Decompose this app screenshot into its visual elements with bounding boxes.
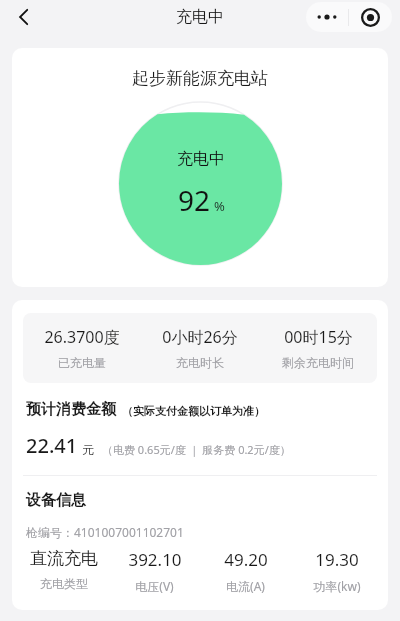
staticText: 元 xyxy=(82,442,94,457)
staticText: 26.3700度 xyxy=(44,326,120,348)
staticText: 功率(kw) xyxy=(313,578,361,594)
staticText: 充电时长 xyxy=(176,355,224,370)
staticText: 充电类型 xyxy=(40,576,88,591)
staticText: 直流充电 xyxy=(30,548,98,569)
staticText: 设备信息 xyxy=(26,491,86,510)
staticText: 19.30 xyxy=(315,548,359,571)
staticText: 0小时26分 xyxy=(162,326,238,348)
button[interactable]: More options xyxy=(306,2,348,32)
staticText: % xyxy=(214,197,225,215)
staticText: 电流(A) xyxy=(226,578,265,594)
staticText: 电压(V) xyxy=(135,578,174,594)
staticText: 392.10 xyxy=(128,548,182,571)
staticText: 起步新能源充电站 xyxy=(132,68,268,89)
staticText: （电费 0.65元/度 ｜ 服务费 0.2元/度） xyxy=(102,442,291,457)
staticText: 49.20 xyxy=(224,548,268,571)
staticText: 枪编号：4101007001102701 xyxy=(26,524,184,540)
staticText: 92 xyxy=(178,181,211,219)
staticText: 充电中 xyxy=(177,149,225,169)
staticText: 充电中 xyxy=(176,7,224,27)
staticText: 已充电量 xyxy=(58,355,106,370)
staticText: 剩余充电时间 xyxy=(282,355,354,370)
staticText: 22.41 xyxy=(26,432,78,459)
staticText: 00时15分 xyxy=(284,326,353,348)
button[interactable]: Back xyxy=(4,0,44,34)
staticText: 预计消费金额 xyxy=(26,400,116,419)
button[interactable]: Close xyxy=(349,2,392,32)
staticText: （实际支付金额以订单为准） xyxy=(122,404,265,418)
